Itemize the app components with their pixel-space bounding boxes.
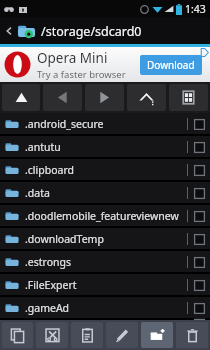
button[interactable]: Up <box>0 18 210 44</box>
button[interactable]: Download <box>140 55 202 75</box>
staticText: /storage/sdcard0 <box>41 23 142 40</box>
button[interactable]: Up one level <box>2 84 40 111</box>
button[interactable]: Select .doodlemobile_featureviewnew <box>193 210 205 222</box>
staticText: .doodlemobile_featureviewnew <box>25 209 179 223</box>
button[interactable]: Paste <box>71 322 103 348</box>
button[interactable]: .estrongs <box>0 251 210 272</box>
staticText: .FileExpert <box>25 278 77 292</box>
button[interactable]: .FileExpert <box>0 274 210 295</box>
button[interactable]: Select .FileExpert <box>193 279 205 291</box>
button[interactable]: Forward <box>85 84 124 111</box>
button[interactable]: .data <box>0 182 210 203</box>
staticText: .clipboard <box>25 163 75 177</box>
other: Up <box>4 26 14 36</box>
staticText: .antutu <box>25 140 61 154</box>
button[interactable]: .antutu <box>0 136 210 157</box>
button[interactable]: Opera Mini <box>0 47 210 82</box>
button[interactable]: Copy <box>2 322 33 348</box>
button[interactable]: Select .clipboard <box>193 164 205 176</box>
button[interactable]: .clipboard <box>0 159 210 180</box>
staticText: Try a faster browser <box>37 68 126 81</box>
staticText: 1:43 <box>185 2 206 16</box>
button[interactable]: Back <box>43 84 82 111</box>
button[interactable]: Select .data <box>193 187 205 199</box>
staticText: Opera Mini <box>37 49 108 67</box>
staticText: .downloadTemp <box>25 232 104 246</box>
button[interactable]: .doodlemobile_featureviewnew <box>0 205 210 226</box>
button[interactable]: Select .estrongs <box>193 256 205 268</box>
staticText: .gameAd <box>25 301 70 315</box>
button[interactable]: Rename <box>106 322 138 348</box>
button[interactable]: Grid view <box>169 84 208 111</box>
staticText: .estrongs <box>25 255 72 269</box>
button[interactable]: Select .downloadTemp <box>193 233 205 245</box>
staticText: Download <box>147 58 195 72</box>
button[interactable]: Select .android_secure <box>193 118 205 130</box>
button[interactable]: Delete <box>176 322 208 348</box>
button[interactable]: New folder <box>141 322 173 348</box>
button[interactable]: .gameAd <box>0 297 210 318</box>
button[interactable]: Home <box>127 84 166 111</box>
button[interactable]: Cut <box>36 322 68 348</box>
staticText: .data <box>25 186 50 200</box>
button[interactable]: .downloadTemp <box>0 228 210 249</box>
button[interactable]: .android_secure <box>0 113 210 134</box>
button[interactable]: Select .gameAd <box>193 302 205 314</box>
staticText: .android_secure <box>25 117 104 131</box>
button[interactable]: Select .antutu <box>193 141 205 153</box>
